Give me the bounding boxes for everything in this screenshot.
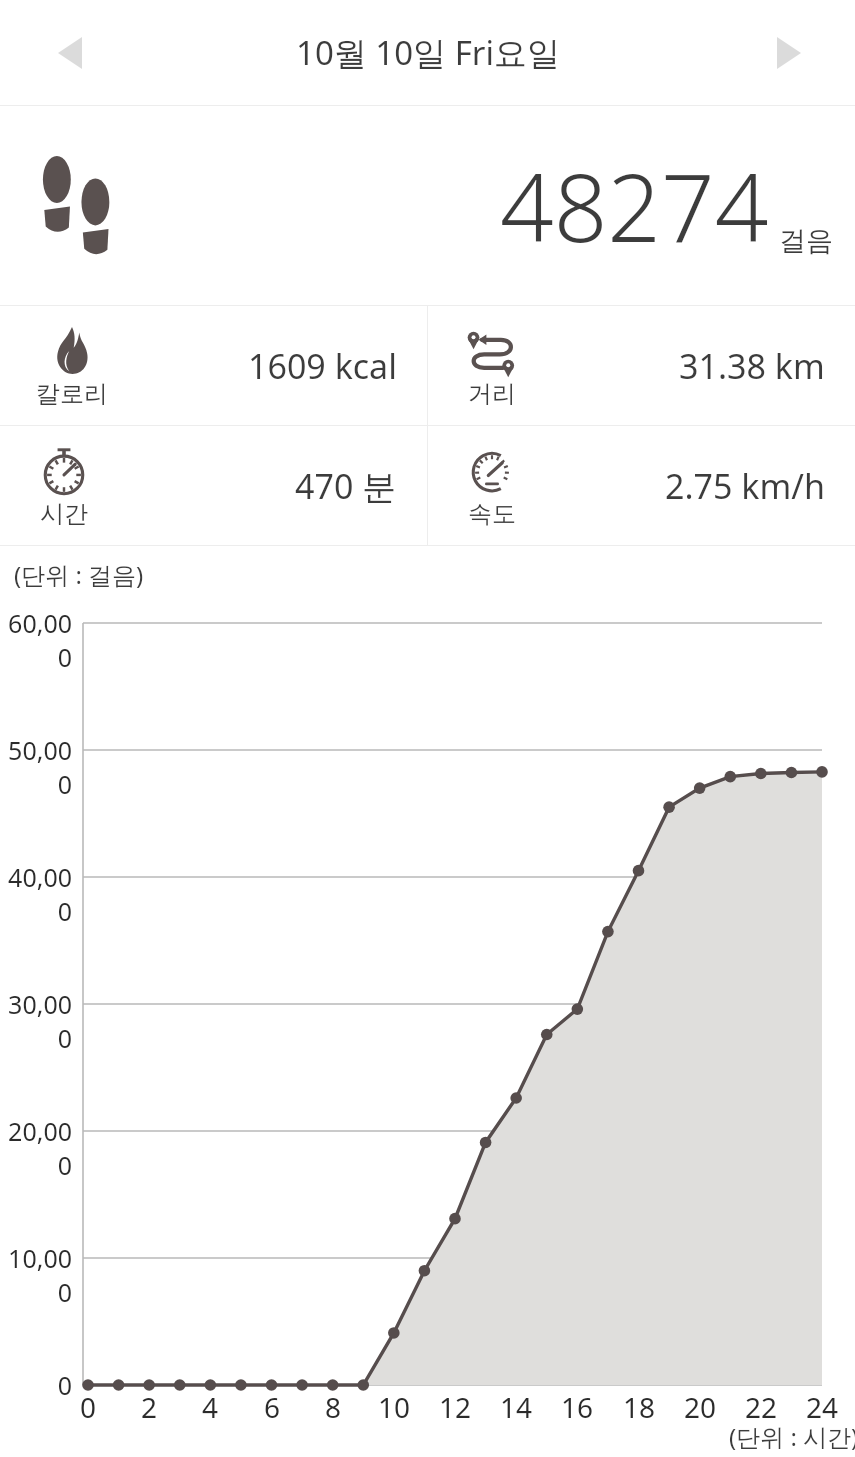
staticText: 6 — [242, 1388, 302, 1426]
staticText: 10 — [364, 1388, 424, 1426]
staticText: 거리 — [468, 379, 516, 409]
staticText: 30,000 — [0, 987, 72, 1055]
button[interactable]: Next day — [751, 15, 827, 91]
staticText: 8 — [303, 1388, 363, 1426]
staticText: 12 — [425, 1388, 485, 1426]
staticText: 10,000 — [0, 1241, 72, 1309]
button[interactable]: 칼로리 — [0, 306, 427, 425]
staticText: 0 — [58, 1388, 118, 1426]
staticText: 20,000 — [0, 1114, 72, 1182]
staticText: 50,000 — [0, 733, 72, 801]
button[interactable]: 거리 — [428, 306, 855, 425]
staticText: 칼로리 — [36, 379, 108, 409]
button[interactable]: 속도 — [428, 426, 855, 545]
staticText: 2 — [119, 1388, 179, 1426]
staticText: 60,000 — [0, 606, 72, 674]
staticText: 48274 — [500, 142, 769, 270]
staticText: 20 — [670, 1388, 730, 1426]
other: Steps — [38, 155, 120, 257]
staticText: 0 — [0, 1368, 72, 1402]
staticText: 2.75 km/h — [665, 463, 825, 509]
staticText: 470 분 — [295, 463, 397, 509]
staticText: 24 — [792, 1388, 852, 1426]
staticText: 4 — [180, 1388, 240, 1426]
button[interactable]: 시간 — [0, 426, 427, 545]
staticText: 속도 — [468, 499, 516, 529]
staticText: 1609 kcal — [248, 343, 397, 389]
staticText: 시간 — [40, 499, 88, 529]
staticText: 31.38 km — [679, 343, 825, 389]
button[interactable]: Steps — [0, 106, 855, 305]
staticText: 10월 10일 Fri요일 — [296, 30, 560, 75]
button[interactable]: Previous day — [32, 15, 108, 91]
staticText: (단위 : 시간) — [729, 1420, 855, 1453]
staticText: 18 — [609, 1388, 669, 1426]
staticText: 16 — [547, 1388, 607, 1426]
staticText: 걸음 — [779, 224, 833, 258]
staticText: 14 — [486, 1388, 546, 1426]
staticText: 40,000 — [0, 860, 72, 928]
staticText: 22 — [731, 1388, 791, 1426]
staticText: (단위 : 걸음) — [14, 558, 144, 591]
